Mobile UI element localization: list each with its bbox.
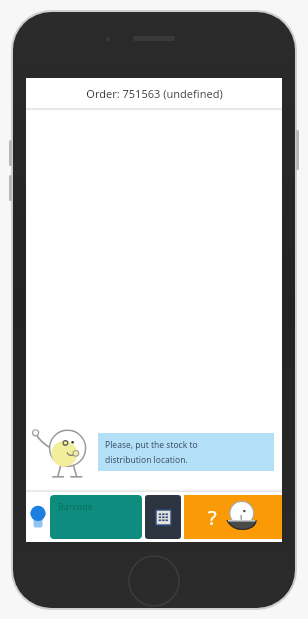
- button[interactable]: Location: [26, 495, 50, 539]
- button[interactable]: Barcode: [50, 495, 142, 539]
- staticText: Barcode: [58, 500, 93, 512]
- button[interactable]: Help: [184, 495, 282, 539]
- staticText: Please, put the stock to distribution lo…: [105, 439, 198, 465]
- staticText: ?: [208, 504, 217, 531]
- button[interactable]: Keypad: [145, 495, 181, 539]
- staticText: Order: 751563 (undefined): [86, 86, 223, 101]
- button[interactable]: Please, put the stock to distribution lo…: [98, 433, 274, 471]
